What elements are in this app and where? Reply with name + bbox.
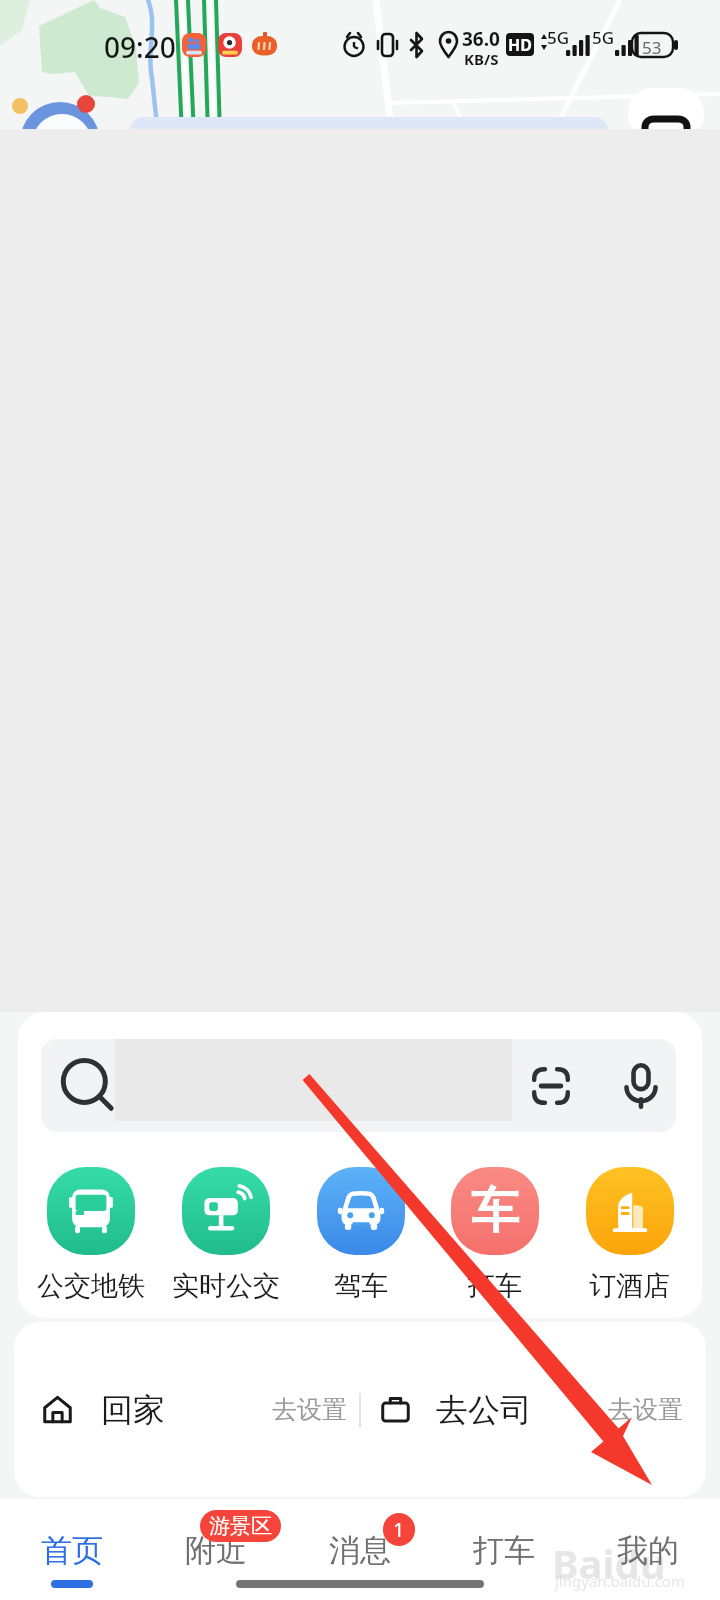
button[interactable]: 实时公交	[163, 1167, 288, 1303]
staticText: 驾车	[334, 1269, 388, 1303]
staticText: 5G	[547, 26, 570, 49]
button[interactable]: 我的	[576, 1499, 720, 1600]
staticText: 5G	[592, 26, 615, 49]
button[interactable]: 首页	[0, 1499, 144, 1600]
staticText: 去公司	[436, 1390, 532, 1430]
staticText: 打车	[468, 1269, 522, 1303]
staticText: 附近	[185, 1531, 247, 1570]
staticText: 游景区	[209, 1513, 272, 1539]
staticText: 36.0	[462, 26, 500, 52]
staticText: HD	[508, 34, 532, 56]
button[interactable]: Voice search	[614, 1059, 668, 1113]
staticText: 53	[642, 36, 662, 59]
staticText: 打车	[473, 1531, 535, 1570]
staticText: 回家	[101, 1390, 165, 1430]
staticText: 实时公交	[172, 1269, 280, 1303]
button[interactable]: Scan	[524, 1059, 578, 1113]
staticText: 订酒店	[589, 1269, 670, 1303]
staticText: Baidu	[552, 1536, 666, 1590]
staticText: 公交地铁	[37, 1269, 145, 1303]
staticText: KB/S	[464, 49, 499, 69]
button[interactable]: 消息	[288, 1499, 432, 1600]
staticText: 去设置	[608, 1394, 683, 1425]
staticText: 去设置	[272, 1394, 347, 1425]
staticText: 1	[393, 1516, 405, 1543]
button[interactable]: 打车	[432, 1499, 576, 1600]
button[interactable]: 车	[432, 1167, 557, 1303]
staticText: 首页	[41, 1531, 103, 1570]
button[interactable]: 订酒店	[567, 1167, 692, 1303]
button[interactable]: 去公司	[361, 1322, 706, 1497]
staticText: 车	[471, 1181, 519, 1241]
button[interactable]: 回家	[14, 1322, 359, 1497]
button[interactable]: 公交地铁	[28, 1167, 153, 1303]
button[interactable]: Search	[41, 1039, 676, 1132]
staticText: jingyan.baidu.com	[555, 1571, 685, 1591]
staticText: 09:20	[104, 28, 176, 66]
button[interactable]: 附近	[144, 1499, 288, 1600]
button[interactable]: 驾车	[298, 1167, 423, 1303]
other: Search	[65, 1063, 111, 1109]
staticText: 我的	[617, 1531, 679, 1570]
staticText: 消息	[329, 1531, 391, 1570]
